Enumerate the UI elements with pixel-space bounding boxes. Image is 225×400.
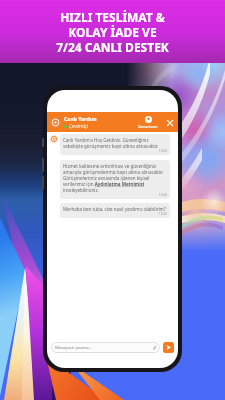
staticText: Çevrimiçi xyxy=(69,123,88,129)
staticText: 15:26 xyxy=(63,212,167,216)
staticText: Merhaba ben tuba, size nasıl yardımcı ol… xyxy=(63,206,166,212)
button[interactable]: Gönder xyxy=(163,342,174,353)
staticText: Canlı Yardım'a Hoş Geldiniz. Güvenliğini… xyxy=(63,137,167,149)
staticText: 15:26 xyxy=(63,193,167,197)
staticText: 15:26 xyxy=(63,149,167,153)
staticText: Uzmanlarım xyxy=(138,124,158,129)
staticText: Hizmet kalitesine arttırılması ve güvenl… xyxy=(63,163,167,193)
button[interactable]: Mesajınızı yazınız... xyxy=(55,342,157,353)
staticText: Mesajınızı yazınız... xyxy=(55,345,93,351)
staticText: HIZLI TESLİMAT & KOLAY İADE VE 7/24 CANL… xyxy=(56,9,169,55)
button[interactable]: Uzmanlarım xyxy=(137,116,159,129)
staticText: Canlı Yardım xyxy=(64,115,97,122)
button[interactable]: Kapat xyxy=(165,118,174,127)
